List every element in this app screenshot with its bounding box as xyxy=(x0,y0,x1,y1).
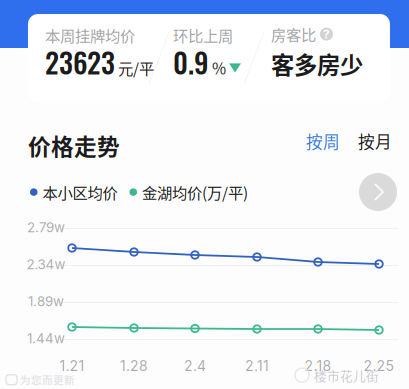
staticText: 楼市花儿街 xyxy=(314,366,379,384)
staticText: 0.9 xyxy=(173,41,209,82)
staticText: 2.79w xyxy=(27,219,65,235)
staticText: ? xyxy=(323,27,330,41)
staticText: 1.44w xyxy=(27,330,65,346)
staticText: 2.34w xyxy=(26,256,65,272)
staticText: 客多房少 xyxy=(271,47,363,81)
staticText: 按月 xyxy=(358,129,392,153)
staticText: 本小区均价 xyxy=(42,181,117,203)
staticText: 房客比 xyxy=(271,23,316,45)
staticText: 按周 xyxy=(306,129,340,153)
button[interactable]: 按周 xyxy=(303,129,343,153)
button[interactable]: Next chart xyxy=(359,173,397,211)
staticText: 本周挂牌均价 xyxy=(45,24,135,46)
staticText: 2.18 xyxy=(304,357,331,374)
staticText: 元/平 xyxy=(118,57,154,79)
staticText: 2.11 xyxy=(245,357,269,374)
staticText: % xyxy=(212,57,226,79)
staticText: 金湖均价(万/平) xyxy=(142,181,248,203)
staticText: 环比上周 xyxy=(173,24,233,46)
button[interactable]: 按月 xyxy=(355,129,395,153)
staticText: 价格走势 xyxy=(28,129,120,162)
staticText: 1.28 xyxy=(120,357,148,374)
staticText: 为您而更新 xyxy=(20,372,75,387)
staticText: 2.25 xyxy=(363,357,394,374)
staticText: 23623 xyxy=(45,41,115,82)
staticText: 1.21 xyxy=(59,357,84,374)
staticText: 1.89w xyxy=(28,293,64,309)
staticText: 2.4 xyxy=(184,357,206,374)
